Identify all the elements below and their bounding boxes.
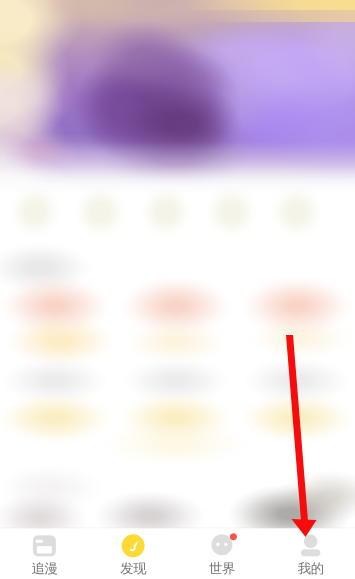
button[interactable]: 发现	[89, 528, 178, 579]
staticText: 发现	[120, 560, 146, 577]
button[interactable]: 追漫	[0, 528, 89, 579]
staticText: 追漫	[31, 560, 57, 577]
button[interactable]: 我的	[266, 528, 355, 579]
staticText: 世界	[209, 560, 235, 577]
button[interactable]: 世界	[177, 528, 266, 579]
staticText: 我的	[298, 560, 324, 577]
